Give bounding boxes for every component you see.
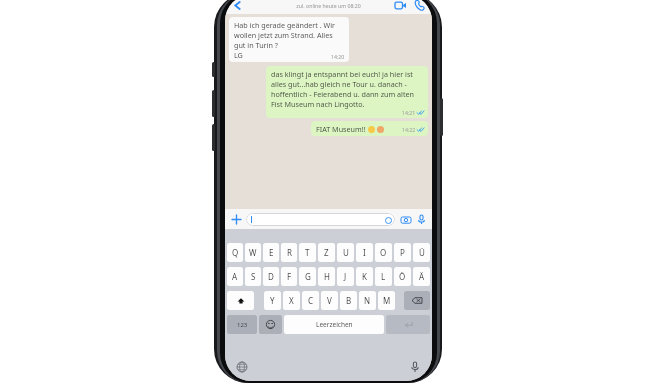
button[interactable]: L — [375, 267, 392, 286]
staticText: J — [344, 271, 347, 282]
button[interactable]: Stickers — [384, 216, 392, 224]
button[interactable]: Ü — [413, 243, 430, 262]
button[interactable]: Hab ich gerade geändert . Wir wollen jet… — [229, 17, 349, 62]
button[interactable]: Q — [227, 243, 243, 262]
staticText: V — [327, 295, 332, 306]
staticText: 14:20 — [331, 53, 345, 60]
staticText: O — [380, 247, 387, 258]
staticText: I — [363, 247, 366, 258]
button[interactable]: A — [227, 267, 243, 286]
button[interactable]: P — [394, 243, 411, 262]
staticText: Ä — [419, 271, 425, 282]
button[interactable]: I — [356, 243, 373, 262]
button[interactable]: G — [299, 267, 316, 286]
button[interactable]: Shift — [227, 291, 254, 310]
button[interactable]: V — [321, 291, 338, 310]
staticText: B — [346, 295, 352, 306]
button[interactable]: F — [281, 267, 297, 286]
staticText: Z — [324, 247, 329, 258]
button[interactable]: Back — [228, 0, 246, 14]
button[interactable]: Backspace — [404, 291, 430, 310]
button[interactable]: H — [318, 267, 335, 286]
button[interactable]: 123 — [227, 315, 257, 334]
staticText: N — [364, 295, 371, 306]
staticText: Y — [270, 295, 275, 306]
button[interactable]: D — [263, 267, 279, 286]
staticText: S — [251, 271, 256, 282]
button[interactable]: E — [263, 243, 279, 262]
staticText: Ü — [419, 247, 425, 258]
staticText: Q — [232, 247, 239, 258]
button[interactable]: Emoji — [259, 315, 282, 334]
button[interactable]: Ä — [413, 267, 430, 286]
staticText: FIAT Museum!! — [316, 124, 366, 134]
button[interactable]: Video call — [392, 0, 408, 13]
staticText: LG — [234, 50, 243, 60]
button[interactable]: Voice call — [411, 0, 427, 13]
staticText: Hab ich gerade geändert . Wir wollen jet… — [234, 20, 345, 50]
button[interactable]: N — [359, 291, 376, 310]
button[interactable]: Stickers — [246, 213, 395, 226]
button[interactable]: Leerzeichen — [284, 315, 384, 334]
button[interactable]: J — [337, 267, 354, 286]
staticText: P — [400, 247, 405, 258]
staticText: 14:21 — [402, 109, 416, 116]
button[interactable]: Attach — [229, 212, 243, 226]
staticText: Leerzeichen — [316, 320, 353, 329]
button[interactable]: M — [378, 291, 395, 310]
staticText: das klingt ja entspannt bei euch! ja hie… — [271, 69, 424, 109]
staticText: H — [324, 271, 330, 282]
staticText: L — [381, 271, 386, 282]
button[interactable]: Z — [318, 243, 335, 262]
staticText: M — [383, 295, 391, 306]
staticText: U — [343, 247, 349, 258]
staticText: Ö — [399, 271, 406, 282]
button[interactable]: K — [356, 267, 373, 286]
button[interactable]: R — [281, 243, 297, 262]
staticText: F — [287, 271, 292, 282]
staticText: 14:22 — [402, 126, 416, 133]
button[interactable]: Change keyboard — [235, 360, 249, 374]
button[interactable]: Dictation — [408, 360, 422, 374]
button[interactable]: FIAT Museum!! — [311, 121, 428, 136]
staticText: T — [305, 247, 310, 258]
button[interactable]: O — [375, 243, 392, 262]
staticText: zul. online heute um 08:20 — [296, 2, 361, 9]
button[interactable]: das klingt ja entspannt bei euch! ja hie… — [266, 66, 428, 118]
staticText: X — [289, 295, 294, 306]
button[interactable]: X — [283, 291, 300, 310]
staticText: G — [305, 271, 311, 282]
button[interactable]: Y — [264, 291, 281, 310]
staticText: E — [269, 247, 274, 258]
staticText: A — [232, 271, 238, 282]
staticText: C — [308, 295, 314, 306]
staticText: K — [362, 271, 367, 282]
staticText: W — [249, 247, 257, 258]
button[interactable]: U — [337, 243, 354, 262]
button[interactable]: B — [340, 291, 357, 310]
button[interactable]: S — [245, 267, 261, 286]
staticText: R — [287, 247, 292, 258]
button[interactable]: Ö — [394, 267, 411, 286]
button[interactable]: Camera — [399, 213, 412, 226]
button[interactable]: T — [299, 243, 316, 262]
button[interactable]: Voice message — [415, 213, 428, 226]
button[interactable]: Return — [386, 315, 430, 334]
staticText: 123 — [237, 321, 248, 329]
button[interactable]: W — [245, 243, 261, 262]
staticText: D — [268, 271, 274, 282]
button[interactable]: C — [302, 291, 319, 310]
